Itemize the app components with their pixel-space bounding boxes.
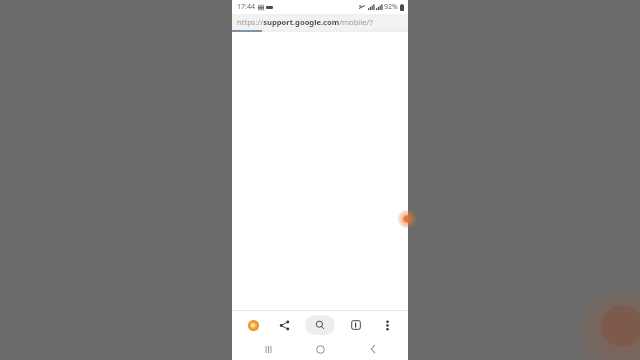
button[interactable]: Tabs [345, 314, 367, 336]
button[interactable]: More options [376, 314, 398, 336]
button[interactable]: https://support.google.com/mobile/?p=dev… [232, 14, 408, 30]
staticText: 92% [384, 2, 398, 12]
button[interactable]: Recents [251, 338, 285, 360]
button[interactable]: Home [242, 314, 264, 336]
button[interactable]: Share [273, 314, 295, 336]
button[interactable]: Search [305, 315, 335, 335]
button[interactable]: Home [303, 338, 337, 360]
staticText: 17:44 [237, 2, 255, 12]
staticText: https://support.google.com/mobile/?p=dev… [237, 17, 405, 27]
button[interactable]: Back [356, 338, 390, 360]
